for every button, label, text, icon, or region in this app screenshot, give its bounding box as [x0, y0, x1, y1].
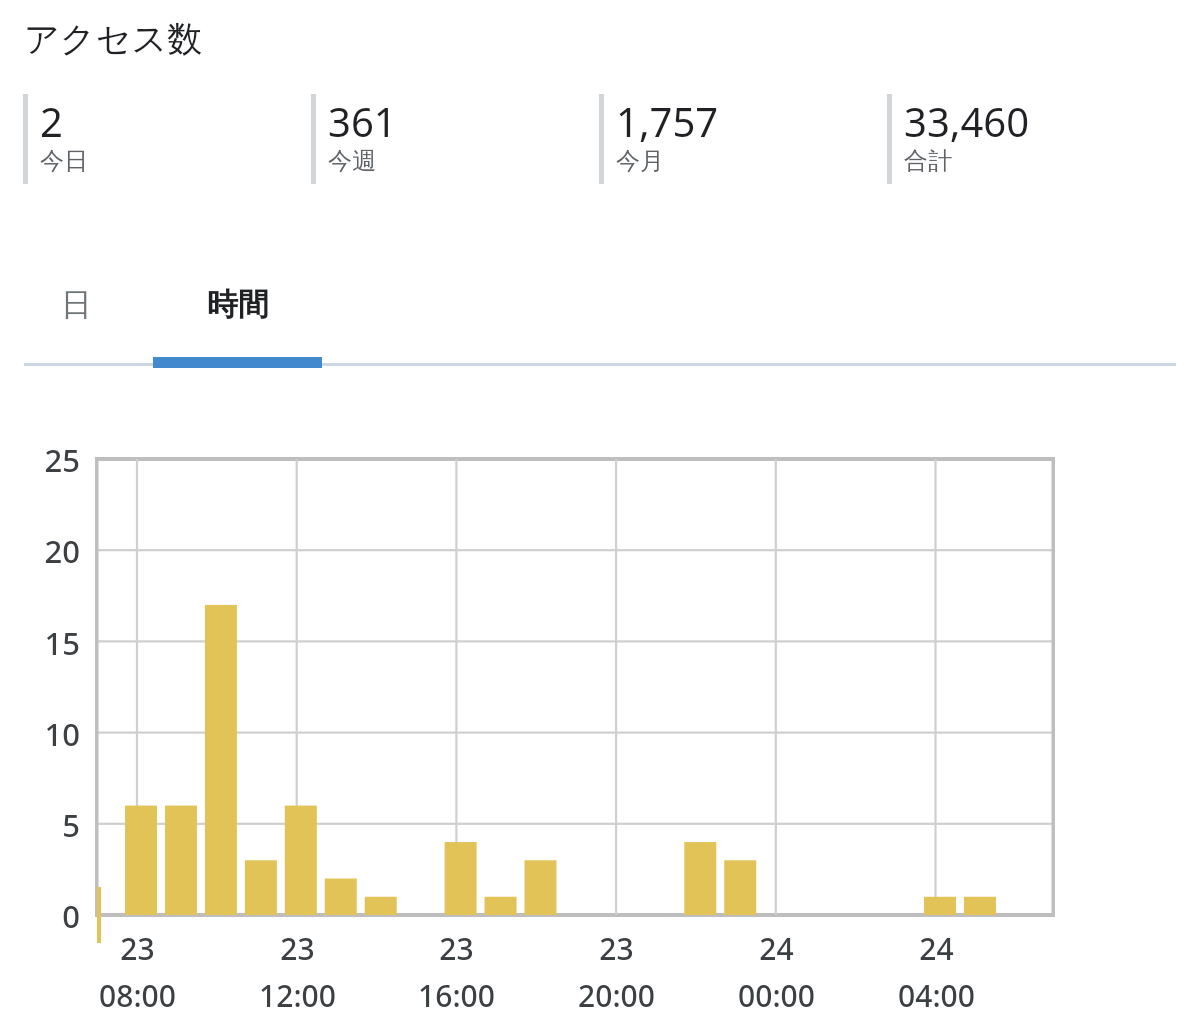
staticText: 25 [44, 439, 80, 481]
staticText: 24 [759, 928, 794, 969]
staticText: 日 [61, 285, 92, 324]
button[interactable]: 日 [0, 272, 153, 368]
staticText: 10 [44, 713, 80, 755]
staticText: 今日 [40, 146, 88, 176]
staticText: アクセス数 [24, 17, 203, 61]
staticText: 00:00 [738, 975, 815, 1016]
staticText: 16:00 [418, 975, 495, 1016]
button[interactable]: 1,757 [599, 94, 869, 184]
staticText: 23 [280, 928, 315, 969]
staticText: 2 [40, 94, 63, 148]
staticText: 今月 [616, 146, 664, 176]
staticText: 24 [919, 928, 954, 969]
staticText: 12:00 [259, 975, 336, 1016]
staticText: 08:00 [99, 975, 176, 1016]
button[interactable]: 時間 [153, 272, 322, 368]
staticText: 23 [599, 928, 634, 969]
staticText: 361 [328, 94, 397, 148]
staticText: 今週 [328, 146, 376, 176]
staticText: 20:00 [578, 975, 655, 1016]
staticText: 0 [62, 895, 80, 937]
button[interactable]: 33,460 [887, 94, 1157, 184]
staticText: 5 [62, 804, 80, 846]
staticText: 1,757 [616, 94, 719, 148]
button[interactable]: 2 [23, 94, 293, 184]
staticText: 33,460 [904, 94, 1030, 148]
staticText: 04:00 [898, 975, 975, 1016]
button[interactable]: 361 [311, 94, 581, 184]
staticText: 15 [44, 622, 80, 664]
staticText: 23 [439, 928, 474, 969]
staticText: 時間 [207, 285, 269, 324]
staticText: 23 [120, 928, 155, 969]
staticText: 20 [44, 530, 80, 572]
staticText: 合計 [904, 146, 952, 176]
